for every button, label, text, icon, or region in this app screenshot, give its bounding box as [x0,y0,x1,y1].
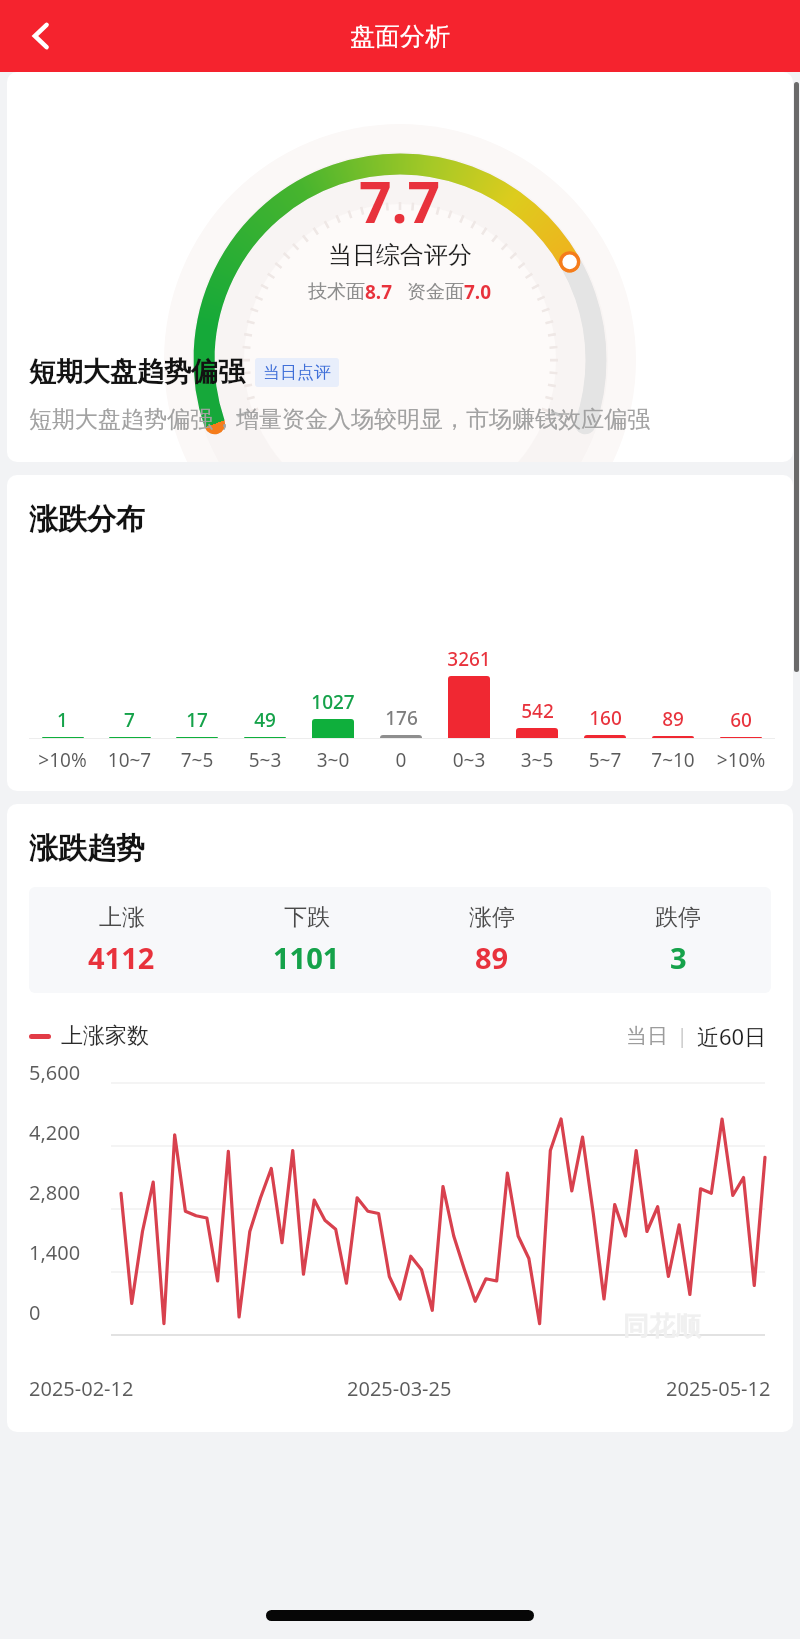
staticText: 89 [475,938,509,977]
staticText: 下跌 [284,903,330,932]
staticText: 上涨 [99,903,145,932]
button[interactable]: 7.7 [7,72,793,462]
staticText: 3~0 [299,747,367,773]
staticText: 2025-02-12 [29,1375,134,1402]
staticText: 17 [186,707,208,733]
staticText: 7.0 [464,279,492,305]
staticText: | [672,1023,693,1049]
staticText: 49 [254,707,276,733]
staticText: 2025-05-12 [666,1375,771,1402]
staticText: 涨停 [469,903,515,932]
staticText: 3~5 [503,747,571,773]
staticText: >10% [29,747,96,773]
staticText: 当日综合评分 [328,240,472,270]
staticText: 1027 [311,689,355,715]
staticText: 542 [521,698,554,724]
staticText: 上涨家数 [61,1022,149,1050]
staticText: 0 [29,1299,41,1326]
staticText: 2,800 [29,1179,81,1206]
staticText: 1101 [273,938,340,977]
staticText: 涨跌分布 [29,501,145,538]
staticText: 5~3 [231,747,299,773]
staticText: 盘面分析 [350,21,450,52]
staticText: 89 [662,706,684,732]
staticText: 4112 [88,938,155,977]
staticText: 5,600 [29,1059,81,1086]
staticText: 7~5 [163,747,231,773]
staticText: 2025-03-25 [347,1375,452,1402]
staticText: 1 [57,707,68,733]
button[interactable]: 涨跌趋势 [7,804,793,1432]
button[interactable]: 当日 [622,1021,672,1051]
staticText: 0 [367,747,435,773]
button[interactable]: Back [12,7,70,65]
staticText: 资金面 [407,280,464,304]
staticText: 160 [589,705,622,731]
staticText: 176 [385,705,418,731]
staticText: >10% [707,747,775,773]
staticText: 7.7 [359,162,441,240]
staticText: 同花顺 [623,1310,701,1343]
staticText: 0~3 [435,747,503,773]
staticText: 8.7 [365,279,393,305]
staticText: 1,400 [29,1239,81,1266]
staticText: 60 [730,707,752,733]
staticText: 当日点评 [263,362,331,383]
staticText: 近60日 [697,1021,767,1051]
staticText: 3 [670,938,687,977]
staticText: 短期大盘趋势偏强 [29,355,245,389]
staticText: 10~7 [96,747,163,773]
staticText: 3261 [447,646,491,672]
staticText: 跌停 [655,903,701,932]
staticText: 7~10 [639,747,707,773]
staticText: 当日 [626,1023,668,1049]
staticText: 5~7 [571,747,639,773]
staticText: 技术面 [308,280,365,304]
staticText: 短期大盘趋势偏强，增量资金入场较明显，市场赚钱效应偏强 [29,405,650,434]
button[interactable]: 涨跌分布 [7,475,793,791]
staticText: 涨跌趋势 [29,830,145,867]
staticText: 4,200 [29,1119,81,1146]
staticText: 7 [124,707,135,733]
button[interactable]: 近60日 [693,1019,771,1053]
